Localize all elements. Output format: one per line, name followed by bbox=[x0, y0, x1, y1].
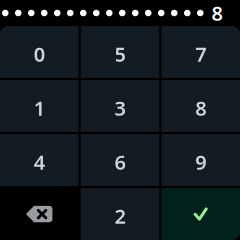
button[interactable]: 7 bbox=[161, 26, 240, 78]
button[interactable]: 5 bbox=[81, 26, 159, 78]
staticText: 3 bbox=[114, 95, 125, 121]
staticText: 8 bbox=[195, 95, 206, 121]
button[interactable]: Confirm bbox=[161, 188, 240, 240]
button[interactable]: 9 bbox=[161, 134, 240, 186]
button[interactable]: 8 bbox=[161, 80, 240, 132]
button[interactable]: 4 bbox=[0, 134, 79, 186]
staticText: 0 bbox=[34, 41, 45, 67]
staticText: 7 bbox=[195, 41, 206, 67]
button[interactable]: 6 bbox=[81, 134, 159, 186]
button[interactable]: 1 bbox=[0, 80, 79, 132]
staticText: 1 bbox=[34, 95, 45, 121]
button[interactable]: Delete bbox=[0, 188, 79, 240]
staticText: 2 bbox=[114, 203, 125, 229]
staticText: 9 bbox=[195, 149, 206, 175]
staticText: 6 bbox=[114, 149, 125, 175]
staticText: 8 bbox=[211, 0, 222, 26]
button[interactable]: 0 bbox=[0, 26, 79, 78]
button[interactable]: 2 bbox=[81, 188, 159, 240]
staticText: 5 bbox=[114, 41, 125, 67]
staticText: 4 bbox=[34, 149, 45, 175]
button[interactable]: 3 bbox=[81, 80, 159, 132]
